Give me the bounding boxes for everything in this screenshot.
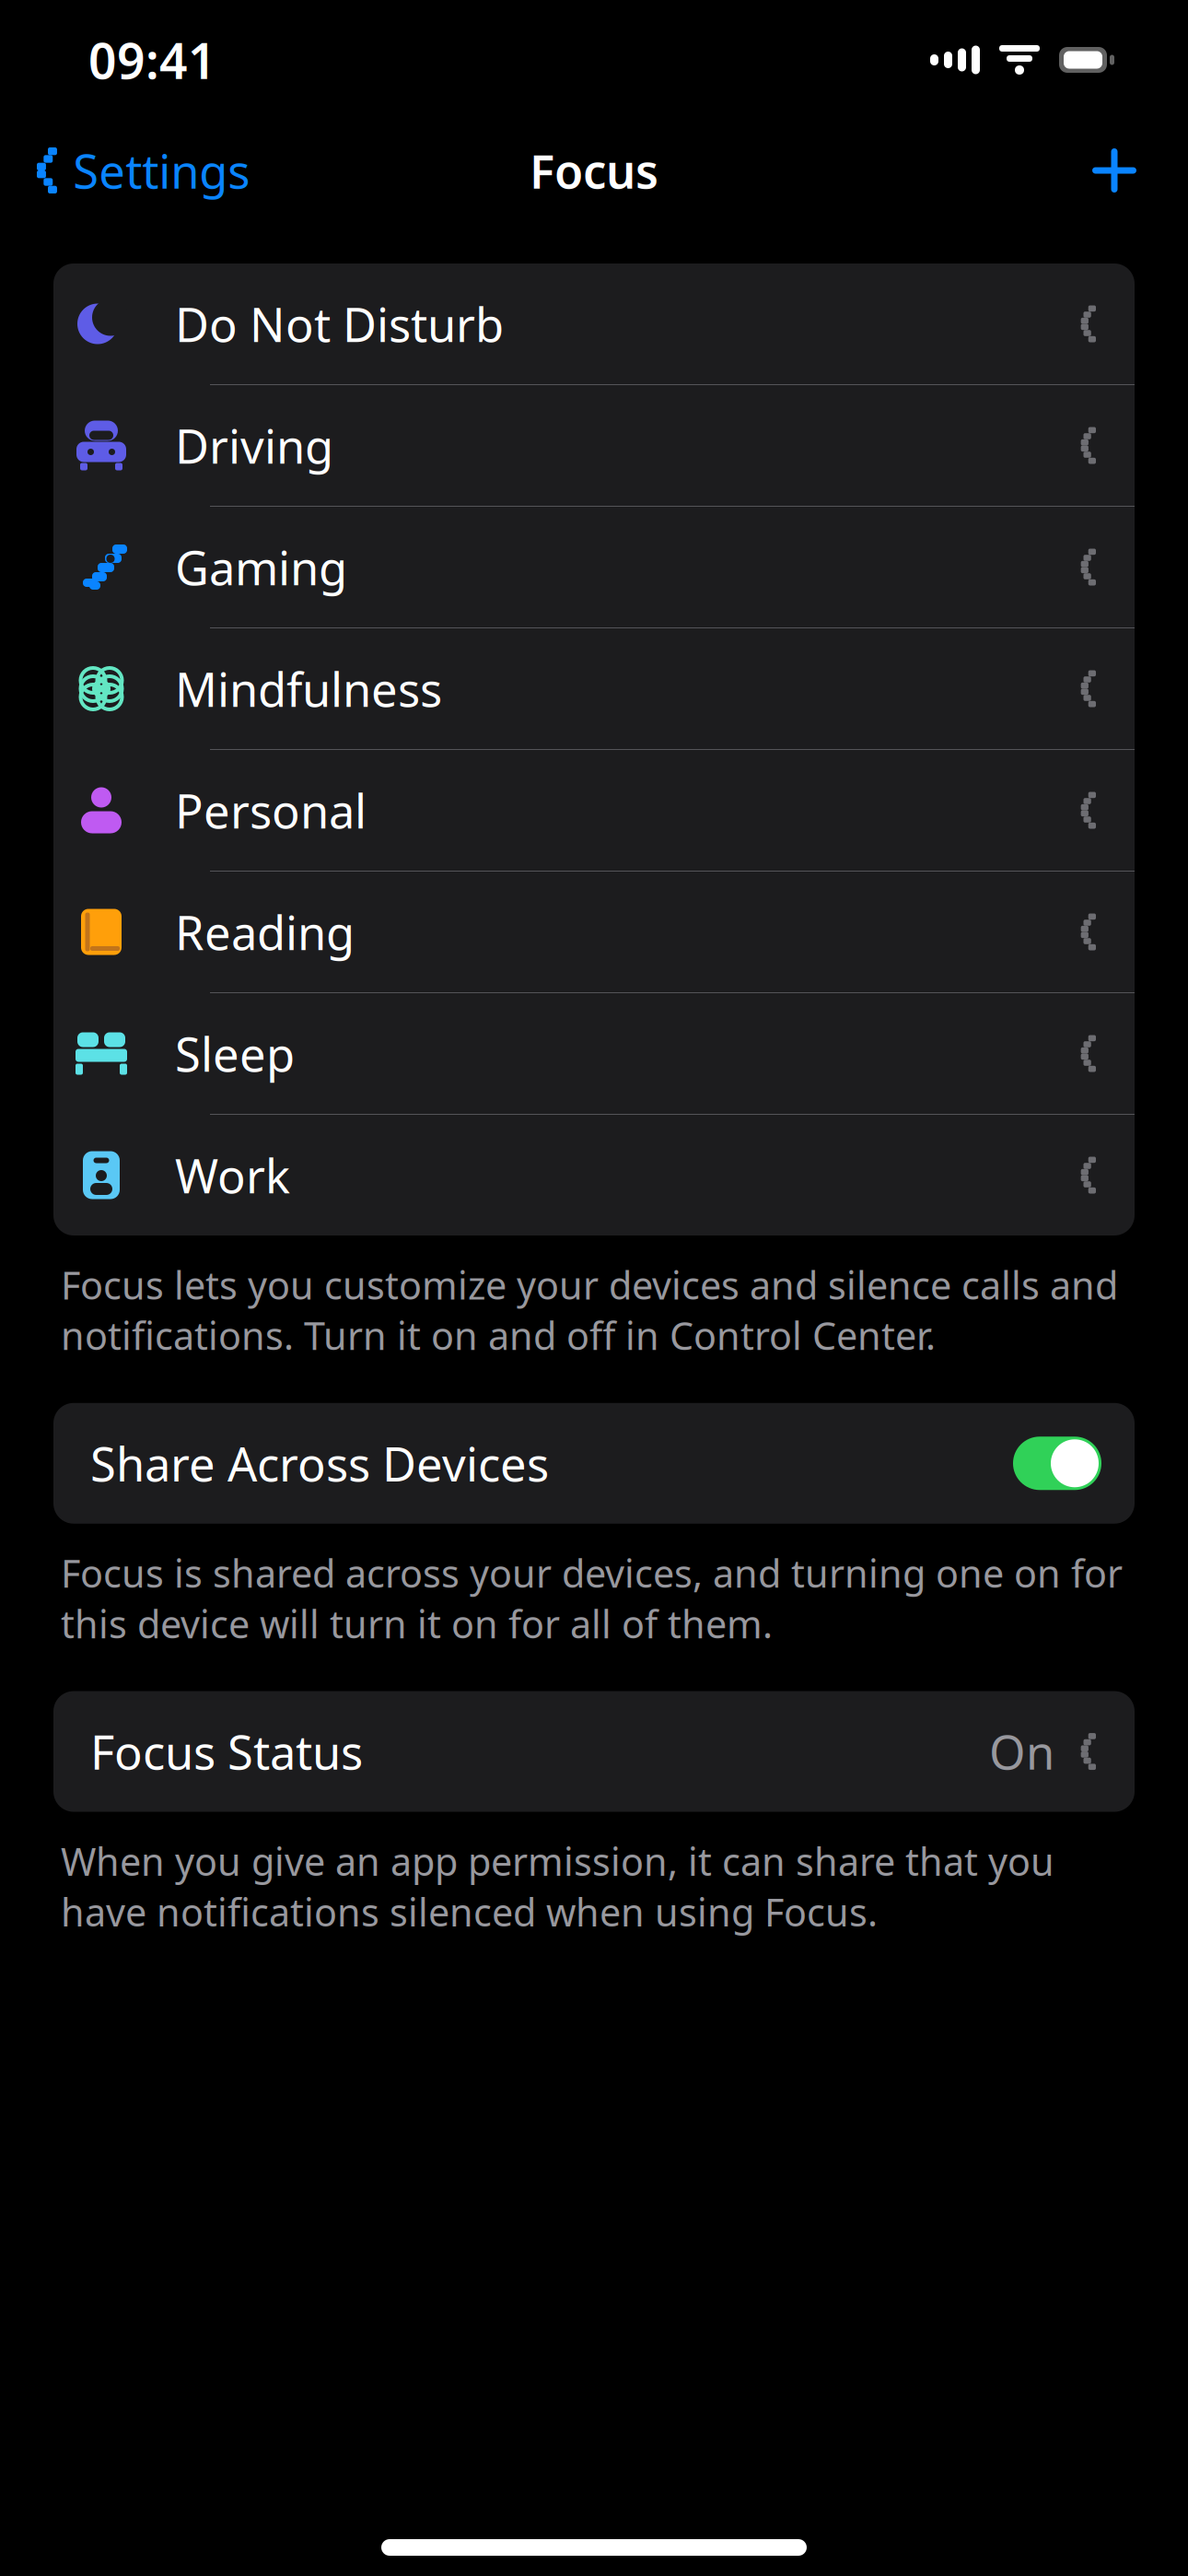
- button[interactable]: Personal: [53, 750, 1135, 871]
- staticText: Mindfulness: [175, 658, 442, 720]
- button[interactable]: Do Not Disturb: [53, 263, 1135, 384]
- staticText: Do Not Disturb: [175, 293, 504, 355]
- button[interactable]: Work: [53, 1115, 1135, 1235]
- button[interactable]: Sleep: [53, 993, 1135, 1114]
- button[interactable]: Driving: [53, 385, 1135, 506]
- staticText: Focus lets you customize your devices an…: [61, 1259, 1118, 1361]
- staticText: 09:41: [88, 27, 216, 93]
- button[interactable]: Mindfulness: [53, 628, 1135, 749]
- staticText: Driving: [175, 415, 333, 477]
- staticText: Focus: [530, 139, 658, 201]
- staticText: Gaming: [175, 536, 347, 598]
- button[interactable]: Focus Status: [53, 1691, 1135, 1812]
- staticText: Sleep: [175, 1023, 295, 1085]
- staticText: Focus is shared across your devices, and…: [61, 1548, 1123, 1649]
- staticText: On: [989, 1720, 1054, 1782]
- staticText: Settings: [73, 139, 250, 201]
- staticText: Focus Status: [90, 1720, 363, 1782]
- button[interactable]: Settings: [37, 125, 265, 216]
- button[interactable]: Share Across Devices, on: [53, 1403, 1135, 1524]
- staticText: When you give an app permission, it can …: [61, 1836, 1054, 1937]
- button[interactable]: Gaming: [53, 507, 1135, 627]
- staticText: Personal: [175, 779, 367, 841]
- staticText: Work: [175, 1144, 290, 1206]
- staticText: Share Across Devices: [90, 1432, 549, 1494]
- staticText: Reading: [175, 901, 355, 963]
- button[interactable]: Reading: [53, 872, 1135, 992]
- button[interactable]: Add Focus: [1079, 135, 1149, 205]
